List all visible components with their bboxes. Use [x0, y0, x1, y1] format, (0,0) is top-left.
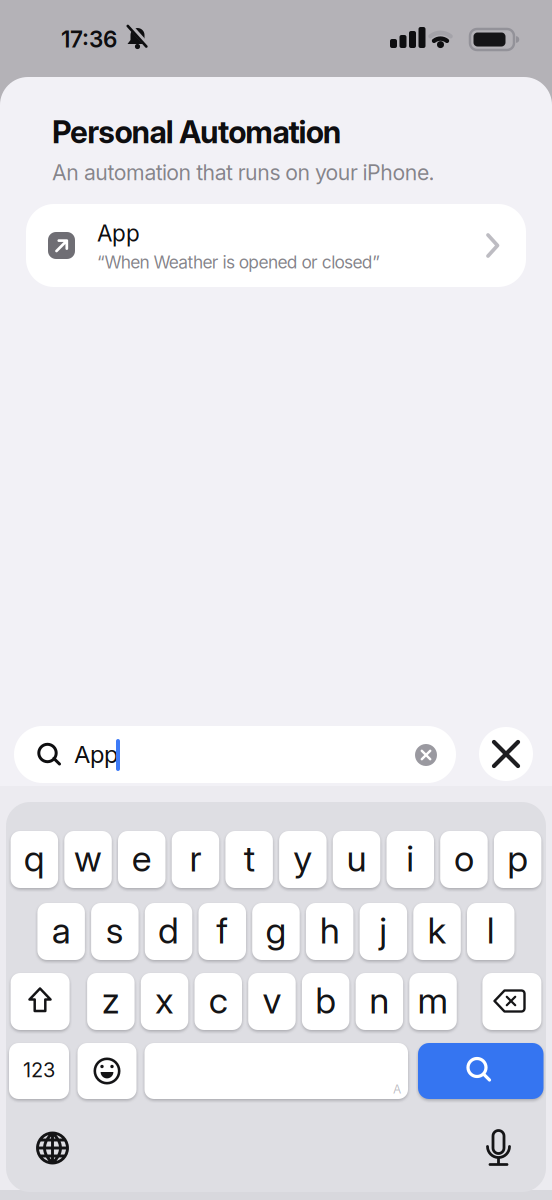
staticText: f: [216, 909, 228, 952]
button[interactable]: App: [14, 726, 456, 783]
staticText: y: [293, 837, 312, 880]
button[interactable]: s: [91, 903, 139, 960]
button[interactable]: [482, 973, 541, 1030]
button[interactable]: p: [494, 831, 541, 888]
button[interactable]: l: [467, 903, 514, 960]
staticText: i: [406, 837, 414, 880]
button[interactable]: u: [333, 831, 380, 888]
button[interactable]: n: [356, 973, 403, 1030]
staticText: s: [106, 909, 124, 952]
staticText: 123: [23, 1058, 55, 1082]
button[interactable]: A: [144, 1043, 408, 1099]
staticText: u: [347, 837, 367, 880]
staticText: “When Weather is opened or closed”: [97, 252, 380, 272]
button[interactable]: x: [141, 973, 188, 1030]
button[interactable]: g: [252, 903, 300, 960]
staticText: z: [102, 979, 120, 1022]
staticText: App: [97, 220, 140, 247]
button[interactable]: v: [248, 973, 296, 1030]
button[interactable]: [418, 1043, 543, 1099]
button[interactable]: [479, 727, 533, 781]
staticText: g: [265, 909, 286, 952]
button[interactable]: [481, 1128, 515, 1168]
staticText: c: [209, 979, 228, 1022]
staticText: d: [158, 909, 179, 952]
button[interactable]: w: [64, 831, 112, 888]
staticText: v: [262, 979, 281, 1022]
button[interactable]: z: [87, 973, 135, 1030]
staticText: w: [74, 837, 102, 880]
button[interactable]: h: [306, 903, 353, 960]
staticText: j: [379, 909, 387, 952]
staticText: m: [418, 979, 449, 1022]
staticText: Personal Automation: [52, 114, 342, 150]
staticText: An automation that runs on your iPhone.: [52, 160, 434, 185]
button[interactable]: q: [11, 831, 58, 888]
button[interactable]: [35, 1131, 69, 1165]
button[interactable]: k: [413, 903, 461, 960]
button[interactable]: d: [145, 903, 192, 960]
staticText: q: [24, 837, 45, 880]
button[interactable]: c: [194, 973, 242, 1030]
staticText: k: [428, 909, 447, 952]
button[interactable]: 123: [9, 1043, 69, 1099]
button[interactable]: App: [26, 204, 526, 287]
staticText: l: [487, 909, 495, 952]
staticText: b: [315, 979, 336, 1022]
staticText: o: [454, 837, 474, 880]
button[interactable]: e: [118, 831, 165, 888]
staticText: e: [132, 837, 152, 880]
staticText: App: [74, 740, 118, 768]
button[interactable]: [11, 973, 70, 1030]
button[interactable]: t: [225, 831, 273, 888]
button[interactable]: [415, 744, 437, 766]
button[interactable]: o: [440, 831, 488, 888]
button[interactable]: i: [386, 831, 434, 888]
staticText: x: [155, 979, 174, 1022]
staticText: r: [189, 837, 201, 880]
staticText: a: [52, 909, 71, 952]
button[interactable]: y: [279, 831, 327, 888]
button[interactable]: b: [302, 973, 349, 1030]
button[interactable]: a: [37, 903, 85, 960]
button[interactable]: r: [172, 831, 219, 888]
staticText: 17:36: [61, 26, 117, 53]
button[interactable]: [77, 1043, 136, 1099]
staticText: A: [393, 1082, 401, 1096]
button[interactable]: m: [409, 973, 457, 1030]
staticText: h: [320, 909, 340, 952]
staticText: t: [244, 837, 255, 880]
staticText: n: [369, 979, 389, 1022]
button[interactable]: j: [360, 903, 407, 960]
button[interactable]: f: [198, 903, 246, 960]
staticText: p: [507, 837, 528, 880]
